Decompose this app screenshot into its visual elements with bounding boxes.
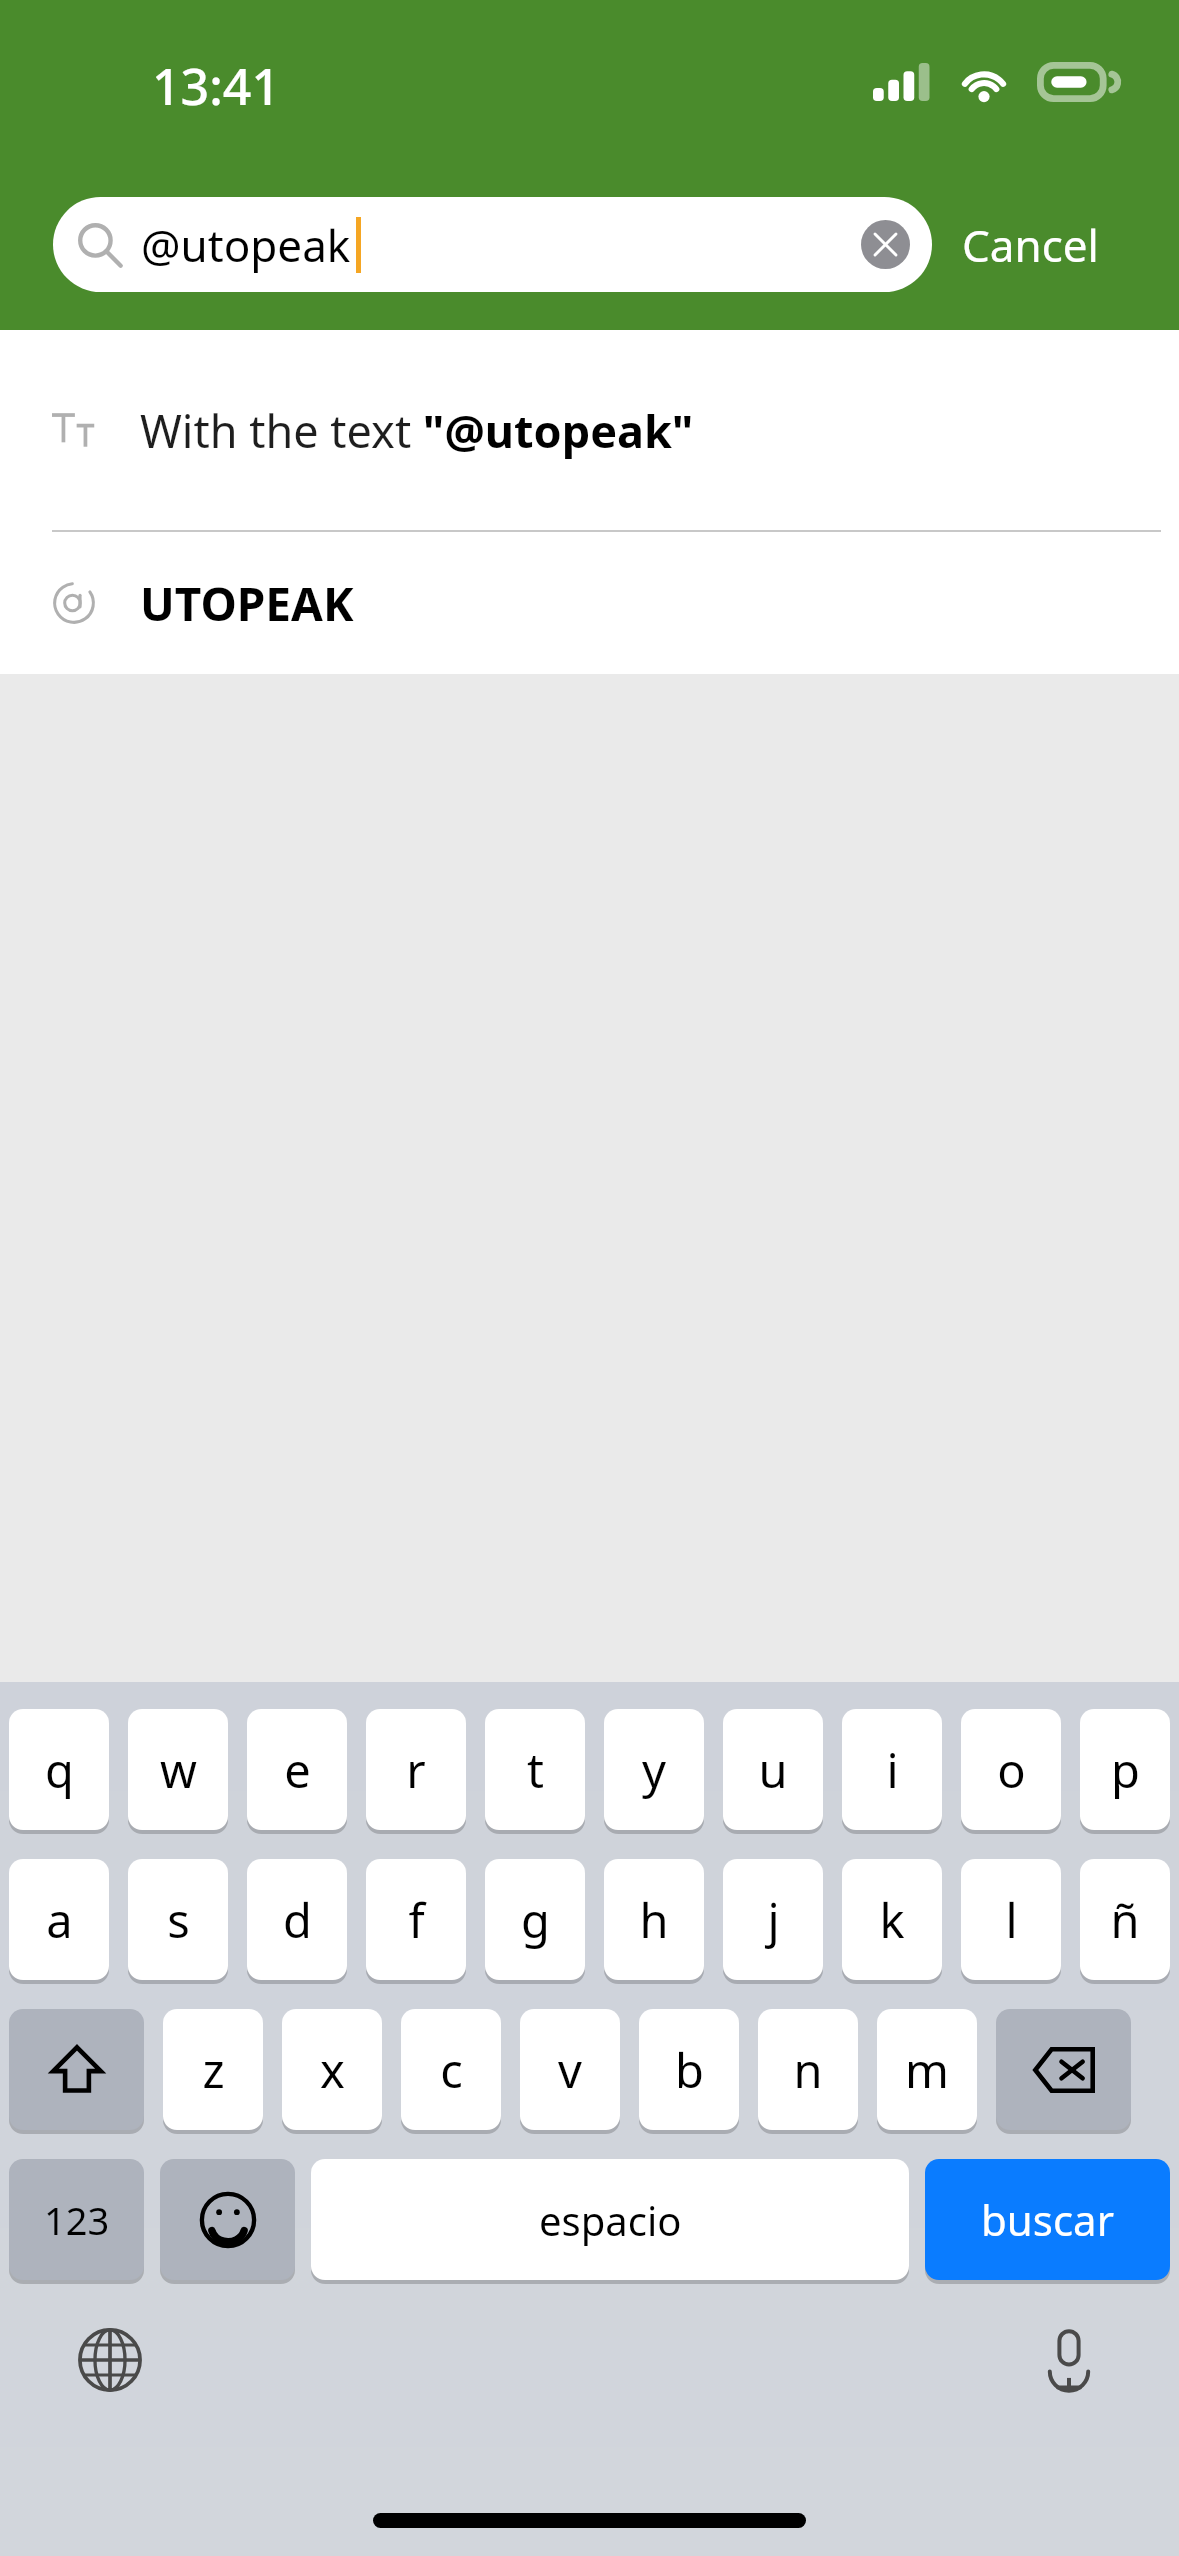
button[interactable]: y [604,1709,704,1830]
button[interactable]: i [842,1709,942,1830]
button[interactable]: f [366,1859,466,1980]
button[interactable]: p [1080,1709,1170,1830]
button[interactable]: espacio [311,2159,909,2280]
button[interactable]: Emoji [160,2159,295,2280]
button[interactable]: Shift [9,2009,144,2130]
button[interactable]: b [639,2009,739,2130]
staticText: u [758,1738,788,1802]
button[interactable]: Numbers and symbols [9,2159,144,2280]
staticText: z [202,2038,225,2102]
button[interactable]: j [723,1859,823,1980]
staticText: l [1005,1888,1018,1952]
staticText: e [284,1738,311,1802]
staticText: @utopeak [141,215,351,275]
staticText: 123 [44,2194,110,2246]
staticText: 13:41 [152,52,280,120]
staticText: h [639,1888,669,1952]
button[interactable]: Cancel [932,201,1119,289]
button[interactable]: d [247,1859,347,1980]
button[interactable]: s [128,1859,228,1980]
button[interactable]: t [485,1709,585,1830]
button[interactable]: n [758,2009,858,2130]
button[interactable]: o [961,1709,1061,1830]
staticText: ñ [1110,1888,1140,1952]
staticText: y [642,1738,666,1802]
button[interactable]: g [485,1859,585,1980]
button[interactable]: Clear text [861,220,910,269]
button[interactable]: @utopeak [53,197,932,292]
staticText: k [879,1888,905,1952]
staticText: q [45,1738,74,1802]
button[interactable]: r [366,1709,466,1830]
staticText: x [320,2038,345,2102]
button[interactable]: c [401,2009,501,2130]
button[interactable]: v [520,2009,620,2130]
button[interactable]: Change keyboard language [64,2314,156,2406]
staticText: s [167,1888,190,1952]
button[interactable]: ñ [1080,1859,1170,1980]
staticText: b [675,2038,704,2102]
staticText: d [283,1888,312,1952]
button[interactable]: w [128,1709,228,1830]
staticText: m [905,2038,949,2102]
button[interactable]: k [842,1859,942,1980]
button[interactable]: z [163,2009,263,2130]
staticText: a [46,1888,73,1952]
staticText: p [1111,1738,1140,1802]
staticText: f [408,1888,425,1952]
button[interactable]: u [723,1709,823,1830]
button[interactable]: e [247,1709,347,1830]
staticText: o [997,1738,1026,1802]
button[interactable]: With the text "@utopeak" [0,330,1179,530]
staticText: UTOPEAK [140,572,354,635]
button[interactable]: h [604,1859,704,1980]
staticText: g [521,1888,550,1952]
button[interactable]: q [9,1709,109,1830]
staticText: t [527,1738,544,1802]
staticText: i [886,1738,899,1802]
button[interactable]: l [961,1859,1061,1980]
button[interactable]: x [282,2009,382,2130]
staticText: With the text "@utopeak" [140,400,694,461]
button[interactable]: m [877,2009,977,2130]
button[interactable]: Voice input [1023,2314,1115,2406]
staticText: j [767,1888,780,1952]
staticText: espacio [539,2193,682,2247]
staticText: c [440,2038,463,2102]
staticText: n [793,2038,823,2102]
button[interactable]: UTOPEAK [0,532,1179,674]
button[interactable]: a [9,1859,109,1980]
staticText: v [558,2038,582,2102]
staticText: r [406,1738,426,1802]
button[interactable]: buscar [925,2159,1170,2280]
button[interactable]: Backspace [996,2009,1131,2130]
staticText: buscar [981,2191,1114,2248]
staticText: w [160,1738,197,1802]
staticText: Cancel [962,215,1099,275]
